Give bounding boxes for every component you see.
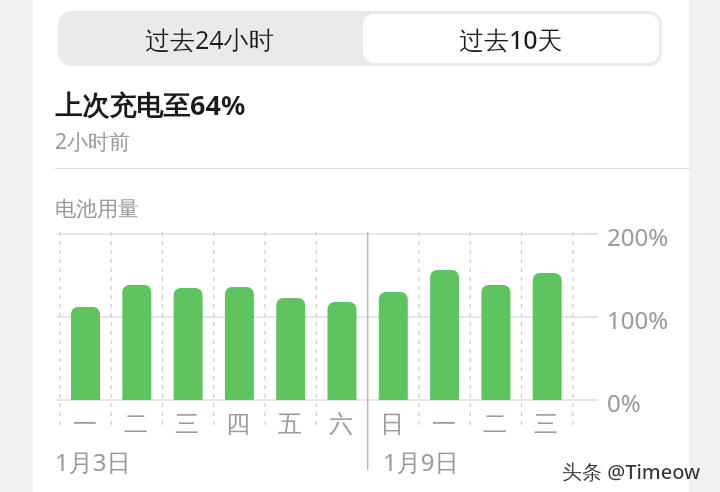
staticText: 三 <box>175 409 199 439</box>
staticText: 一 <box>73 409 97 439</box>
staticText: 三 <box>534 409 558 439</box>
staticText: 二 <box>124 409 148 439</box>
staticText: 过去24小时 <box>145 22 274 56</box>
staticText: 日 <box>380 409 404 439</box>
button[interactable]: 过去24小时 <box>58 11 360 66</box>
staticText: 四 <box>226 409 250 439</box>
staticText: 1月9日 <box>383 445 459 478</box>
staticText: 过去10天 <box>459 22 563 56</box>
staticText: 二 <box>483 409 507 439</box>
staticText: 200% <box>607 220 669 253</box>
staticText: 五 <box>278 409 302 439</box>
staticText: 1月3日 <box>55 445 131 478</box>
staticText: 100% <box>607 303 669 336</box>
staticText: 上次充电至64% <box>55 86 246 123</box>
staticText: 一 <box>432 409 456 439</box>
staticText: 2小时前 <box>55 127 131 156</box>
staticText: 0% <box>607 386 641 419</box>
staticText: 六 <box>329 409 353 439</box>
button[interactable]: 过去10天 <box>363 14 659 63</box>
staticText: 电池用量 <box>55 196 139 222</box>
staticText: 头条 @Timeow <box>562 458 701 485</box>
